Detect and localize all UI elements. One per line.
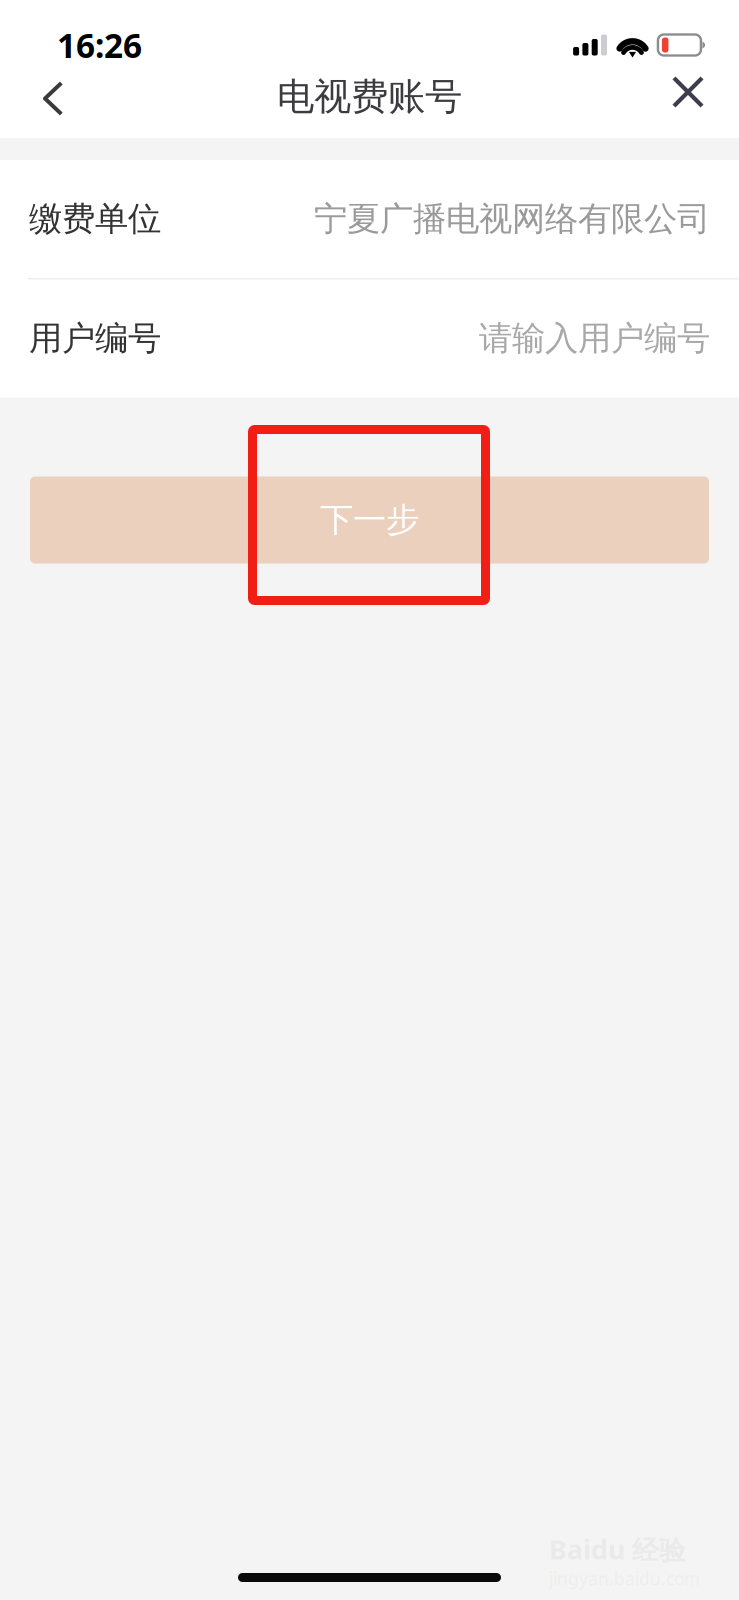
button[interactable]: Back: [0, 62, 110, 138]
button[interactable]: 缴费单位: [0, 160, 739, 278]
staticText: 16:26: [57, 23, 142, 67]
staticText: 下一步: [320, 499, 419, 540]
staticText: 缴费单位: [29, 198, 161, 239]
staticText: 请输入用户编号: [479, 318, 710, 359]
button[interactable]: 下一步: [30, 476, 709, 563]
staticText: 用户编号: [29, 318, 161, 359]
button[interactable]: Close: [629, 62, 739, 138]
staticText: 电视费账号: [277, 74, 462, 120]
staticText: 宁夏广播电视网络有限公司: [314, 198, 710, 239]
staticText: Baidu 经验: [549, 1531, 686, 1567]
button[interactable]: 用户编号: [0, 279, 739, 397]
